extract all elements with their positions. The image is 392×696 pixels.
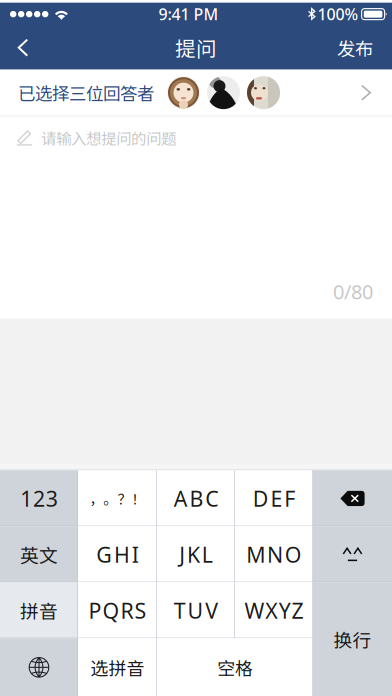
button[interactable]: JKL: [157, 526, 235, 582]
button[interactable]: DEF: [235, 470, 313, 526]
button[interactable]: 换行: [313, 582, 392, 696]
staticText: JKL: [179, 540, 213, 568]
staticText: PQRS: [88, 596, 146, 624]
button[interactable]: 选拼音: [78, 638, 157, 696]
button[interactable]: 123: [0, 470, 78, 526]
staticText: TUV: [174, 596, 218, 624]
staticText: 提问: [175, 33, 217, 63]
button[interactable]: 拼音: [0, 582, 78, 638]
button[interactable]: 英文: [0, 526, 78, 582]
button[interactable]: GHI: [78, 526, 157, 582]
staticText: 已选择三位回答者: [18, 80, 154, 105]
button[interactable]: [313, 470, 392, 526]
button[interactable]: [313, 526, 392, 582]
staticText: 拼音: [20, 597, 58, 624]
staticText: DEF: [253, 484, 295, 512]
staticText: 100%: [318, 3, 359, 25]
button[interactable]: WXYZ: [235, 582, 313, 638]
button[interactable]: ABC: [157, 470, 235, 526]
staticText: ABC: [174, 484, 218, 512]
staticText: 9:41 PM: [158, 3, 218, 25]
staticText: 英文: [20, 541, 58, 568]
staticText: 换行: [333, 626, 371, 653]
button[interactable]: 发布: [318, 26, 392, 70]
button[interactable]: MNO: [235, 526, 313, 582]
button[interactable]: TUV: [157, 582, 235, 638]
button[interactable]: PQRS: [78, 582, 157, 638]
staticText: 请输入想提问的问题: [41, 127, 176, 149]
staticText: 空格: [217, 654, 253, 680]
staticText: 0/80: [333, 278, 373, 305]
staticText: 123: [20, 484, 58, 512]
button[interactable]: ，。？！: [78, 470, 157, 526]
button[interactable]: [0, 638, 78, 696]
staticText: MNO: [246, 540, 302, 568]
button[interactable]: 已选择三位回答者: [0, 70, 392, 116]
staticText: WXYZ: [245, 596, 303, 624]
staticText: 发布: [337, 34, 373, 61]
staticText: GHI: [96, 540, 139, 568]
button[interactable]: Back: [0, 26, 46, 70]
staticText: 选拼音: [90, 654, 144, 680]
staticText: ，。？！: [89, 488, 145, 508]
button[interactable]: 空格: [157, 638, 313, 696]
